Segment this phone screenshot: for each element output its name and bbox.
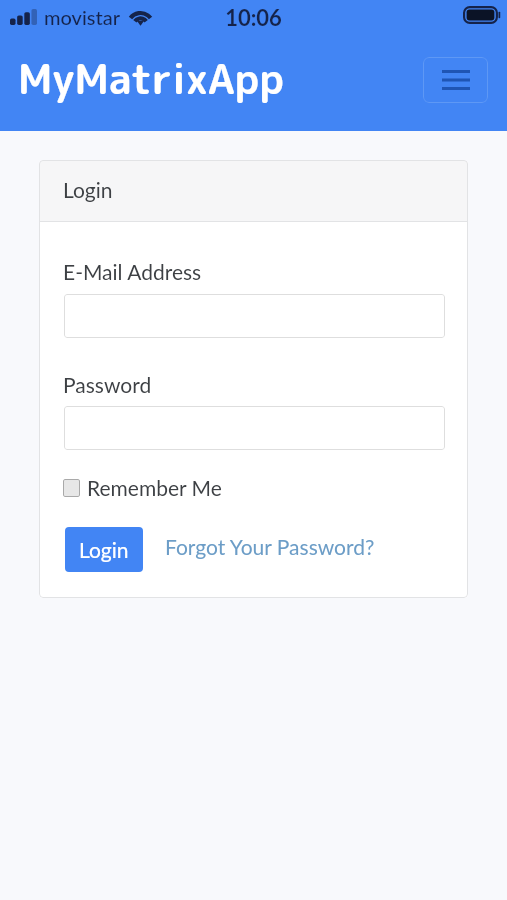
staticText: movistar	[44, 5, 121, 29]
button[interactable]: Forgot Your Password?	[158, 528, 382, 565]
staticText: Forgot Your Password?	[165, 534, 375, 559]
staticText: 10:06	[0, 4, 507, 30]
staticText: Login	[63, 177, 113, 202]
staticText: Remember Me	[87, 475, 222, 500]
staticText: Password	[63, 372, 152, 397]
staticText: E-Mail Address	[63, 259, 202, 284]
button[interactable]	[64, 406, 445, 450]
button[interactable]: Remember Me	[63, 475, 222, 500]
button[interactable]	[64, 294, 445, 338]
button[interactable]: Open navigation menu	[423, 57, 488, 103]
staticText: Login	[79, 537, 129, 562]
button[interactable]: Login	[65, 527, 143, 572]
staticText: MyMatrixApp	[18, 50, 284, 107]
